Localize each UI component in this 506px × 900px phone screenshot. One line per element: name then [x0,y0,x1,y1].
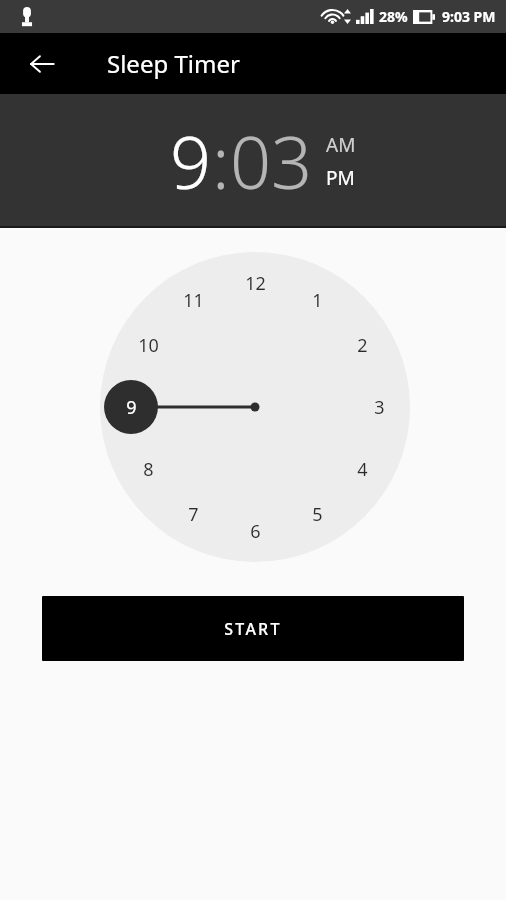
button[interactable]: PM [326,165,355,191]
button[interactable]: 8 [128,449,168,489]
button[interactable]: 03 [230,112,313,210]
button[interactable]: 12 [235,263,275,303]
staticText: PM [326,165,355,191]
button[interactable]: 10 [128,325,168,365]
staticText: 12 [245,271,266,296]
button[interactable]: 11 [173,280,213,320]
button[interactable]: AM [326,132,356,158]
button[interactable]: START [42,596,464,661]
button[interactable]: 1 [297,280,337,320]
button[interactable]: 2 [342,325,382,365]
button[interactable]: 5 [297,494,337,534]
staticText: 9:03 PM [442,7,496,26]
staticText: Sleep Timer [107,47,240,80]
button[interactable]: 12 [100,252,410,562]
staticText: 28% [379,7,408,26]
button[interactable]: Back [18,40,66,88]
staticText: 2 [357,333,368,358]
staticText: 10 [138,333,159,358]
button[interactable]: 4 [342,449,382,489]
staticText: 8 [143,457,154,482]
staticText: 03 [230,112,313,210]
staticText: 9 [170,112,212,210]
staticText: 7 [188,502,199,527]
staticText: 3 [374,395,385,420]
button[interactable]: 9 [111,387,151,427]
staticText: : [212,112,230,210]
staticText: START [224,618,282,640]
staticText: AM [326,132,356,158]
staticText: 9 [126,395,137,420]
button[interactable]: 3 [359,387,399,427]
button[interactable]: 6 [235,511,275,551]
staticText: 4 [357,457,368,482]
button[interactable]: 7 [173,494,213,534]
staticText: 5 [312,502,323,527]
button[interactable]: 9 [170,112,212,210]
staticText: 11 [183,288,204,313]
staticText: 1 [312,288,323,313]
staticText: 6 [250,519,261,544]
